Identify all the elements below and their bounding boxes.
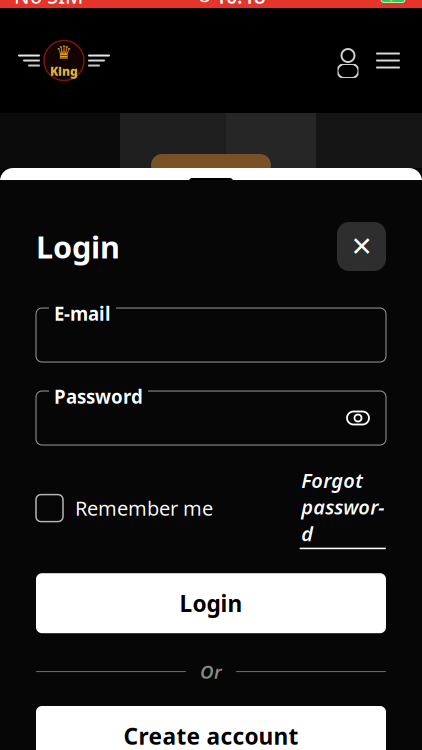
- staticText: ⚡: [385, 0, 400, 3]
- button[interactable]: Close: [337, 222, 386, 271]
- button[interactable]: Forgot password: [299, 461, 386, 555]
- staticText: No SIM: [14, 0, 83, 9]
- staticText: Create account: [123, 721, 298, 750]
- staticText: ♛: [55, 42, 72, 63]
- button[interactable]: Login: [36, 573, 386, 633]
- staticText: 10:18: [215, 0, 265, 9]
- staticText: Forgot password: [301, 467, 384, 547]
- button[interactable]: Menu: [368, 38, 408, 82]
- staticText: Or: [200, 659, 222, 684]
- staticText: ✕: [350, 231, 372, 262]
- button[interactable]: Show password: [338, 398, 378, 438]
- staticText: Login: [179, 588, 242, 618]
- button[interactable]: Remember me: [36, 489, 213, 528]
- staticText: Remember me: [75, 495, 213, 521]
- staticText: E-mail: [54, 301, 111, 326]
- staticText: Login: [36, 226, 120, 267]
- staticText: Password: [54, 384, 143, 409]
- button[interactable]: Account: [328, 38, 368, 82]
- staticText: King: [50, 63, 78, 79]
- button[interactable]: Create account: [36, 706, 386, 750]
